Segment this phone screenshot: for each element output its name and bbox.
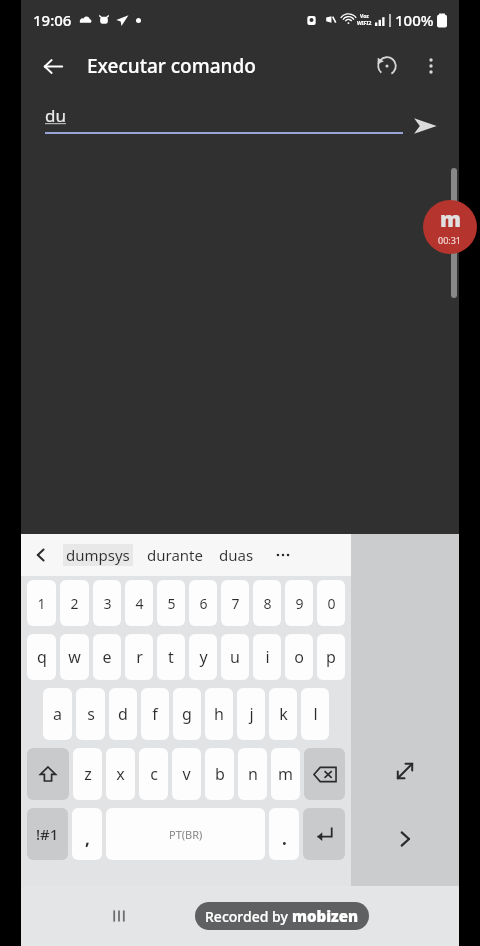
button[interactable]: b [205, 748, 234, 800]
button[interactable]: r [125, 634, 153, 680]
staticText: 3 [103, 594, 112, 613]
button[interactable]: Backspace [304, 748, 345, 800]
staticText: g [182, 703, 192, 725]
button[interactable]: PT(BR) [106, 808, 265, 860]
button[interactable]: Mobizen recorder [423, 200, 477, 254]
button[interactable]: 5 [157, 580, 185, 626]
button[interactable]: c [139, 748, 168, 800]
staticText: 00:31 [438, 234, 462, 246]
staticText: 2 [70, 594, 79, 613]
button[interactable]: Back [31, 44, 75, 88]
button[interactable]: . [269, 808, 299, 860]
staticText: 19:06 [33, 10, 72, 30]
staticText: f [152, 703, 158, 725]
staticText: Voz [360, 13, 369, 20]
staticText: 6 [199, 594, 208, 613]
button[interactable]: z [73, 748, 102, 800]
button[interactable]: h [205, 688, 233, 740]
button[interactable]: v [172, 748, 201, 800]
button[interactable]: , [72, 808, 102, 860]
staticText: , [85, 827, 90, 850]
staticText: mobizen [292, 906, 359, 926]
staticText: j [249, 703, 254, 725]
button[interactable]: l [301, 688, 329, 740]
button[interactable]: 0 [317, 580, 345, 626]
staticText: s [87, 703, 95, 725]
button[interactable]: 9 [285, 580, 313, 626]
staticText: d [118, 703, 128, 725]
staticText: 8 [263, 594, 272, 613]
button[interactable]: Resize keyboard [380, 746, 430, 796]
staticText: p [326, 646, 336, 668]
staticText: o [294, 646, 304, 668]
button[interactable]: Send [403, 104, 447, 148]
staticText: x [116, 763, 125, 785]
button[interactable]: 4 [125, 580, 153, 626]
staticText: z [84, 763, 92, 785]
button[interactable]: y [189, 634, 217, 680]
staticText: n [248, 763, 258, 785]
staticText: a [53, 703, 62, 725]
button[interactable]: n [238, 748, 267, 800]
button[interactable]: k [269, 688, 297, 740]
button[interactable]: Move keyboard right [380, 814, 430, 864]
button[interactable]: More options [409, 44, 453, 88]
staticText: Recorded by [205, 907, 292, 926]
staticText: !#1 [36, 824, 59, 844]
button[interactable]: 6 [189, 580, 217, 626]
staticText: Executar comando [87, 53, 256, 79]
button[interactable]: p [317, 634, 345, 680]
button[interactable]: u [221, 634, 249, 680]
button[interactable]: dumpsys [63, 544, 133, 566]
button[interactable]: 1 [27, 580, 56, 626]
button[interactable]: m [271, 748, 300, 800]
staticText: 9 [295, 594, 304, 613]
staticText: 0 [327, 594, 336, 613]
staticText: t [168, 646, 174, 668]
button[interactable]: d [109, 688, 137, 740]
staticText: l [313, 703, 318, 725]
button[interactable]: w [60, 634, 89, 680]
staticText: m [440, 205, 461, 234]
staticText: 7 [231, 594, 240, 613]
button[interactable]: History [365, 44, 409, 88]
staticText: c [150, 763, 158, 785]
staticText: durante [147, 545, 203, 565]
button[interactable]: x [106, 748, 135, 800]
button[interactable]: Previous suggestions [21, 534, 61, 576]
button[interactable]: 2 [60, 580, 89, 626]
button[interactable]: j [237, 688, 265, 740]
button[interactable]: f [141, 688, 169, 740]
staticText: m [278, 763, 293, 785]
button[interactable]: Recent apps [97, 894, 141, 938]
staticText: dumpsys [66, 545, 130, 565]
button[interactable]: o [285, 634, 313, 680]
staticText: duas [219, 545, 254, 565]
staticText: WIFI2 [357, 20, 372, 27]
button[interactable]: 7 [221, 580, 249, 626]
staticText: q [37, 646, 47, 668]
button[interactable]: More suggestions [268, 540, 298, 570]
staticText: u [230, 646, 240, 668]
button[interactable]: i [253, 634, 281, 680]
button[interactable]: q [27, 634, 56, 680]
staticText: r [136, 646, 143, 668]
staticText: 4 [135, 594, 144, 613]
button[interactable]: s [76, 688, 105, 740]
button[interactable]: 3 [93, 580, 121, 626]
staticText: 1 [37, 594, 46, 613]
button[interactable]: t [157, 634, 185, 680]
button[interactable]: 8 [253, 580, 281, 626]
staticText: k [279, 703, 288, 725]
staticText: . [282, 827, 287, 850]
button[interactable]: e [93, 634, 121, 680]
button[interactable]: a [43, 688, 72, 740]
staticText: i [265, 646, 270, 668]
button[interactable]: durante [147, 545, 203, 565]
button[interactable]: Enter [303, 808, 345, 860]
button[interactable]: !#1 [27, 808, 68, 860]
staticText: PT(BR) [169, 827, 203, 842]
button[interactable]: g [173, 688, 201, 740]
button[interactable]: duas [219, 545, 254, 565]
button[interactable]: Shift [27, 748, 69, 800]
